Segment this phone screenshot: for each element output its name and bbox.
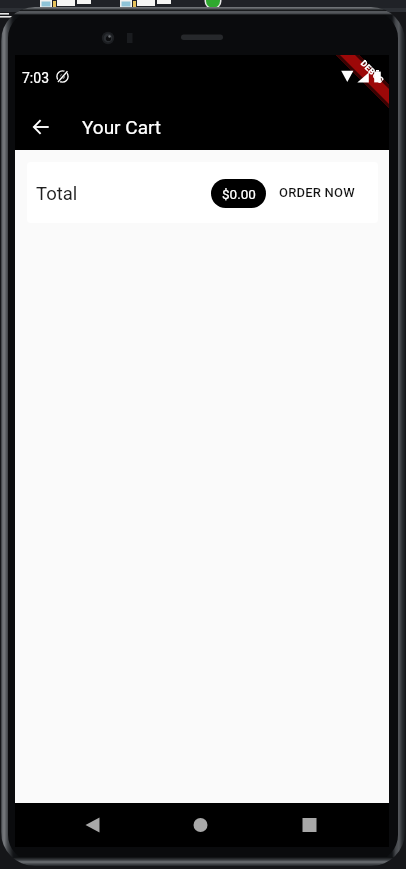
staticText: $0.00 [222,186,256,202]
button[interactable]: Total [27,162,378,223]
staticText: ORDER NOW [279,185,355,200]
staticText: 7:03 [22,70,49,86]
staticText: DEBUG [359,58,386,86]
button[interactable]: ORDER NOW [279,185,355,200]
button[interactable]: Back [15,103,62,150]
staticText: Your Cart [82,116,162,138]
staticText: Total [36,183,78,205]
button[interactable]: $0.00 [211,179,266,208]
